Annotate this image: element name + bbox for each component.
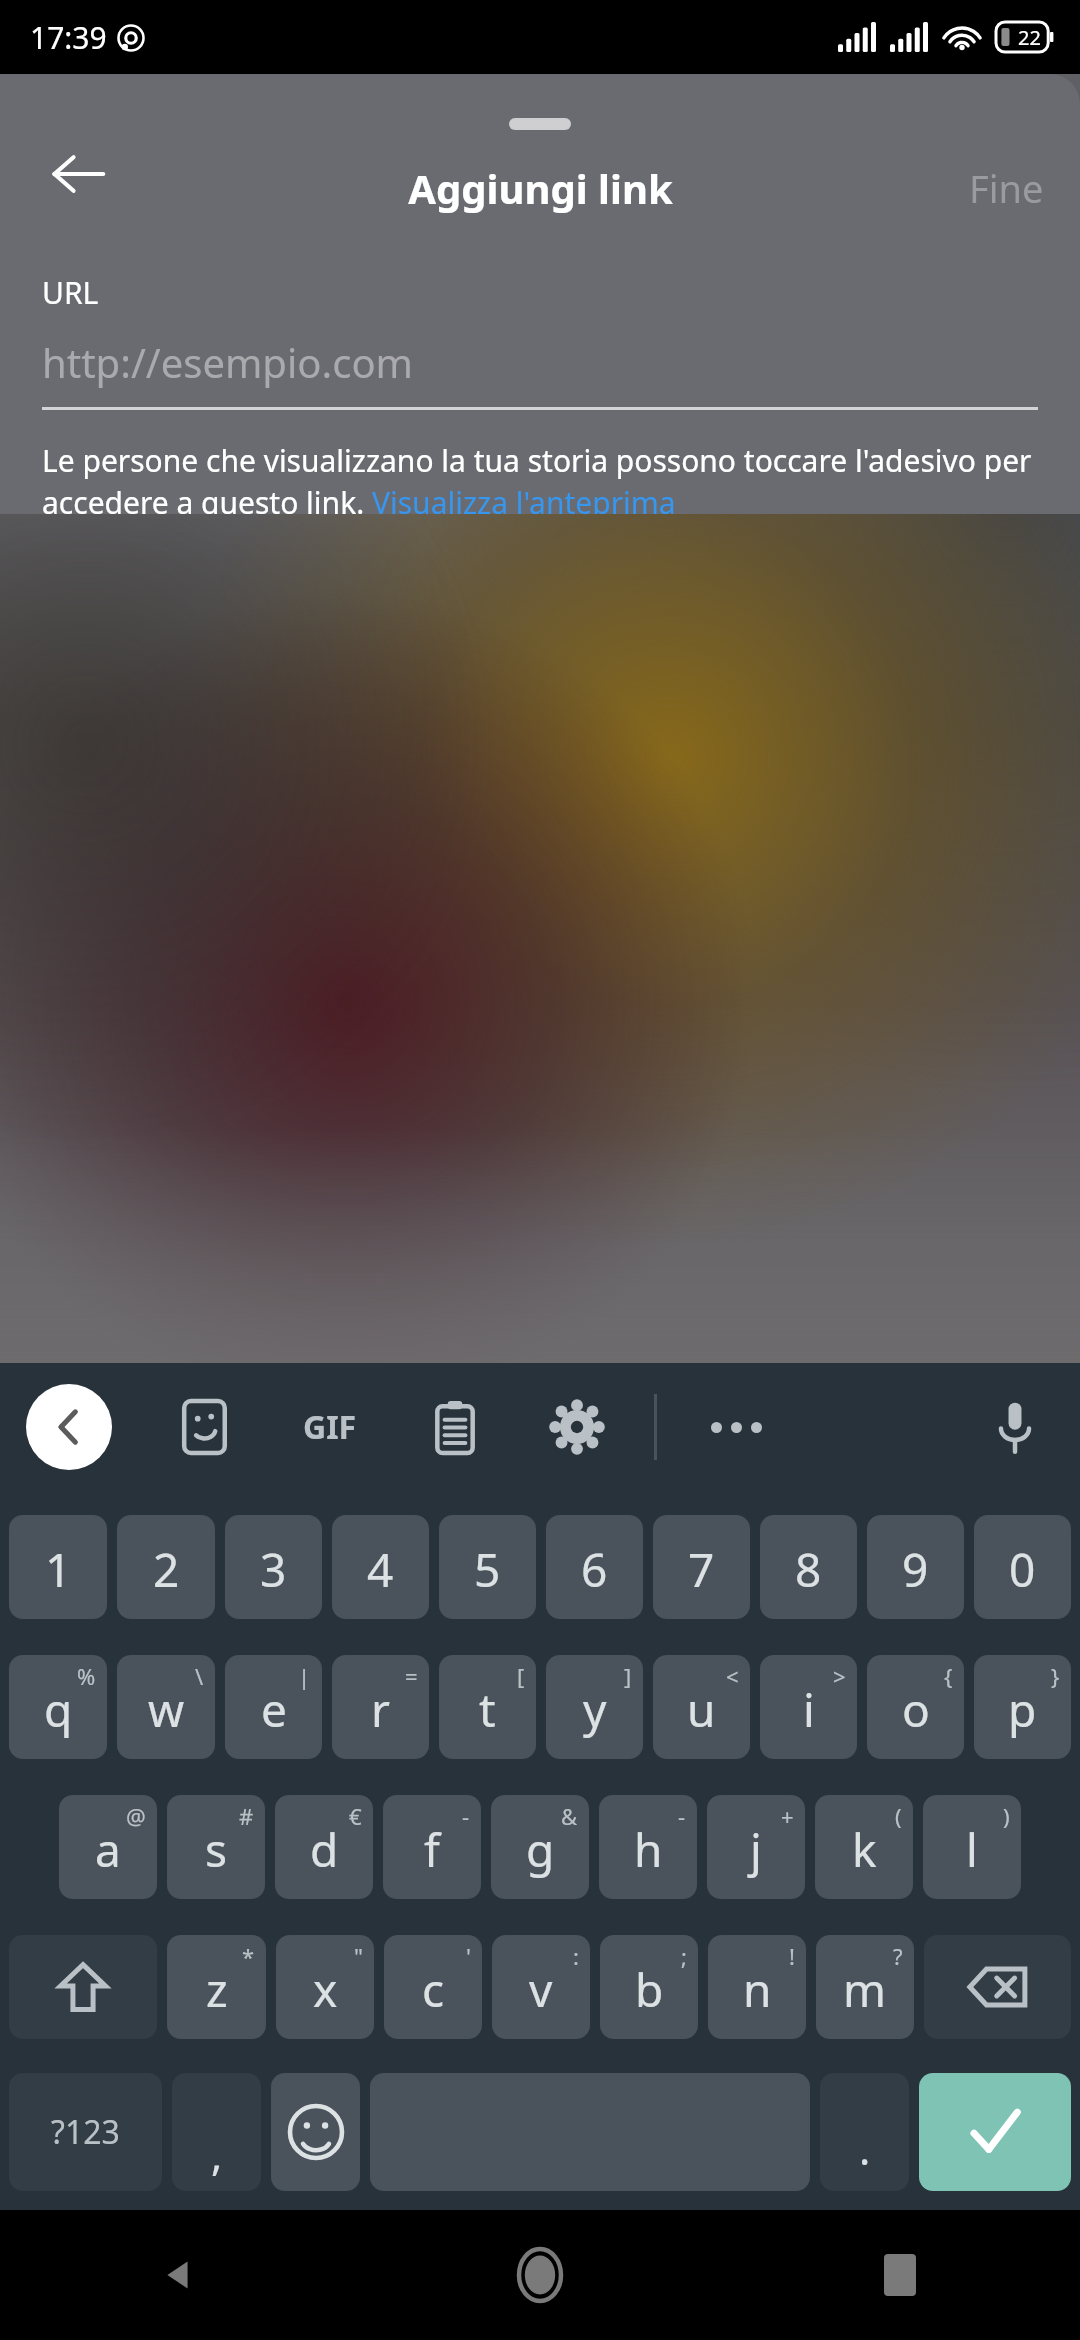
button[interactable]: j: [707, 1795, 805, 1899]
button[interactable]: Home: [360, 2210, 720, 2340]
button[interactable]: Appunti: [418, 1390, 492, 1464]
staticText: &: [561, 1801, 578, 1831]
button[interactable]: w: [117, 1655, 215, 1759]
button[interactable]: c: [384, 1935, 482, 2039]
staticText: -: [462, 1801, 470, 1831]
staticText: ): [1003, 1801, 1010, 1831]
button[interactable]: Impostazioni: [540, 1390, 614, 1464]
button[interactable]: Dettatura vocale: [976, 1388, 1054, 1466]
staticText: +: [781, 1801, 794, 1831]
button[interactable]: e: [225, 1655, 322, 1759]
staticText: #: [239, 1801, 254, 1831]
button[interactable]: 5: [439, 1515, 536, 1619]
staticText: 2: [153, 1538, 180, 1601]
button[interactable]: s: [167, 1795, 265, 1899]
button[interactable]: Chiudi barra strumenti: [26, 1384, 112, 1470]
staticText: a: [95, 1818, 121, 1881]
button[interactable]: i: [760, 1655, 857, 1759]
staticText: 5: [474, 1538, 501, 1601]
button[interactable]: m: [816, 1935, 914, 2039]
staticText: 0: [1009, 1538, 1036, 1601]
button[interactable]: Maiuscole: [9, 1935, 157, 2039]
button[interactable]: 6: [546, 1515, 643, 1619]
button[interactable]: z: [167, 1935, 266, 2039]
staticText: s: [205, 1818, 228, 1881]
staticText: ?: [893, 1941, 903, 1971]
button[interactable]: Le persone che visualizzano la tua stori…: [42, 440, 1038, 514]
button[interactable]: l: [923, 1795, 1021, 1899]
button[interactable]: http://esempio.com: [42, 335, 413, 389]
staticText: n: [743, 1958, 772, 2021]
staticText: 17:39: [30, 17, 107, 58]
button[interactable]: 2: [117, 1515, 215, 1619]
button[interactable]: x: [276, 1935, 374, 2039]
button[interactable]: Aggiungi link: [408, 161, 673, 215]
button[interactable]: n: [708, 1935, 806, 2039]
staticText: l: [966, 1818, 978, 1881]
button[interactable]: o: [867, 1655, 964, 1759]
staticText: r: [371, 1678, 390, 1741]
staticText: x: [313, 1958, 338, 2021]
button[interactable]: 7: [653, 1515, 750, 1619]
button[interactable]: App recenti: [720, 2210, 1080, 2340]
button[interactable]: 1: [9, 1515, 107, 1619]
staticText: 22: [1018, 24, 1041, 51]
staticText: i: [803, 1678, 815, 1741]
button[interactable]: Fine: [969, 162, 1044, 214]
button[interactable]: t: [439, 1655, 536, 1759]
button[interactable]: ?123: [9, 2073, 162, 2191]
staticText: .: [859, 2120, 871, 2177]
staticText: t: [479, 1678, 496, 1741]
staticText: %: [77, 1661, 96, 1691]
button[interactable]: u: [653, 1655, 750, 1759]
staticText: (: [895, 1801, 902, 1831]
button[interactable]: g: [491, 1795, 589, 1899]
button[interactable]: 8: [760, 1515, 857, 1619]
button[interactable]: 4: [332, 1515, 429, 1619]
button[interactable]: 3: [225, 1515, 322, 1619]
button[interactable]: Emoji: [271, 2073, 360, 2191]
button[interactable]: d: [275, 1795, 373, 1899]
button[interactable]: h: [599, 1795, 697, 1899]
staticText: 8: [795, 1538, 822, 1601]
staticText: >: [833, 1661, 846, 1691]
button[interactable]: Indietro: [0, 2210, 360, 2340]
button[interactable]: ,: [172, 2073, 261, 2191]
button[interactable]: 0: [974, 1515, 1071, 1619]
button[interactable]: 9: [867, 1515, 964, 1619]
button[interactable]: f: [383, 1795, 481, 1899]
staticText: 9: [902, 1538, 929, 1601]
staticText: *: [242, 1941, 255, 1971]
staticText: Fine: [969, 162, 1044, 214]
staticText: e: [261, 1678, 287, 1741]
button[interactable]: q: [9, 1655, 107, 1759]
staticText: w: [148, 1678, 185, 1741]
staticText: q: [44, 1678, 73, 1741]
button[interactable]: .: [820, 2073, 909, 2191]
button[interactable]: Indietro: [34, 130, 122, 218]
button[interactable]: Altro: [699, 1390, 773, 1464]
button[interactable]: r: [332, 1655, 429, 1759]
staticText: b: [635, 1958, 664, 2021]
staticText: v: [529, 1958, 553, 2021]
button[interactable]: y: [546, 1655, 643, 1759]
button[interactable]: Cancella: [924, 1935, 1071, 2039]
button[interactable]: v: [492, 1935, 590, 2039]
staticText: ]: [624, 1661, 632, 1691]
button[interactable]: p: [974, 1655, 1071, 1759]
staticText: GIF: [303, 1405, 357, 1449]
staticText: €: [349, 1801, 362, 1831]
staticText: [: [517, 1661, 525, 1691]
staticText: 1: [45, 1538, 72, 1601]
staticText: c: [422, 1958, 445, 2021]
button[interactable]: Invio: [919, 2073, 1071, 2191]
button[interactable]: a: [59, 1795, 157, 1899]
button[interactable]: k: [815, 1795, 913, 1899]
button[interactable]: Sticker: [168, 1390, 242, 1464]
staticText: j: [750, 1818, 762, 1881]
staticText: 4: [367, 1538, 394, 1601]
button[interactable]: GIF: [290, 1387, 370, 1467]
button[interactable]: b: [600, 1935, 698, 2039]
staticText: p: [1008, 1678, 1037, 1741]
